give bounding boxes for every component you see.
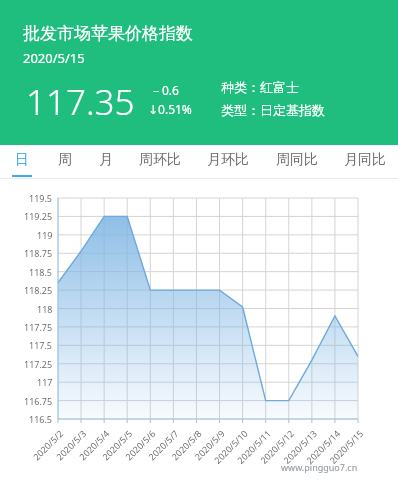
staticText: ↓0.51% [148, 101, 192, 117]
button[interactable]: 月同比 [344, 145, 386, 179]
staticText: 周环比 [139, 151, 181, 169]
staticText: 批发市场苹果价格指数 [23, 23, 193, 44]
staticText: 117.35 [26, 78, 135, 126]
button[interactable]: 日 [12, 145, 32, 179]
staticText: 类型：日定基指数 [221, 102, 325, 118]
staticText: －0.6 [150, 82, 179, 98]
button[interactable]: 周同比 [276, 145, 318, 179]
staticText: 月同比 [344, 151, 386, 169]
button[interactable]: 月环比 [207, 145, 249, 179]
staticText: 月环比 [207, 151, 249, 169]
staticText: 种类：红富士 [221, 79, 299, 95]
staticText: 2020/5/15 [23, 49, 85, 67]
button[interactable]: 周 [58, 145, 72, 179]
staticText: 月 [99, 151, 113, 169]
staticText: 周 [58, 151, 72, 169]
button[interactable]: 月 [99, 145, 113, 179]
staticText: 周同比 [276, 151, 318, 169]
other: Apple price index chart [0, 179, 398, 493]
staticText: 日 [15, 151, 29, 169]
button[interactable]: 周环比 [139, 145, 181, 179]
